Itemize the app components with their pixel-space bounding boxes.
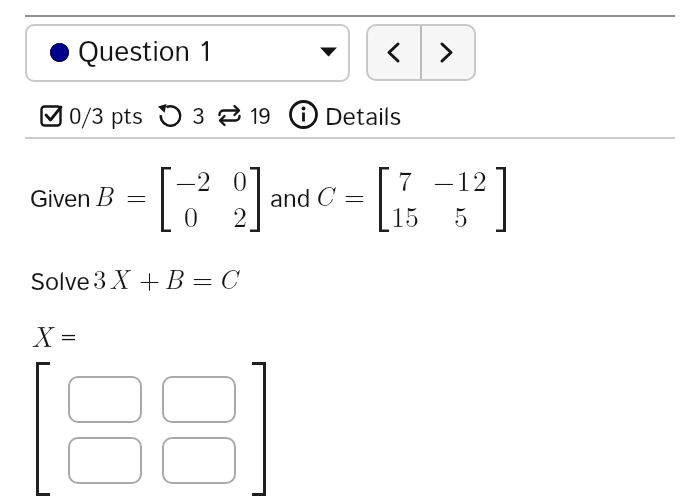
staticText: B xyxy=(94,176,114,214)
button[interactable] xyxy=(162,376,236,423)
staticText: 3 xyxy=(192,101,205,134)
staticText: −12 xyxy=(433,159,489,199)
staticText: B xyxy=(164,259,184,297)
staticText: C xyxy=(314,176,334,214)
staticText: Given xyxy=(30,182,91,218)
staticText: 0 xyxy=(184,195,199,235)
staticText: 0/3 pts xyxy=(69,101,143,134)
button[interactable]: Details xyxy=(289,100,399,130)
button[interactable] xyxy=(68,437,142,484)
staticText: 2 xyxy=(233,195,248,235)
staticText: 0 xyxy=(233,159,248,199)
staticText: and xyxy=(270,182,311,218)
staticText: 19 xyxy=(249,101,271,134)
button[interactable] xyxy=(68,376,142,423)
staticText: = xyxy=(192,259,214,297)
staticText: 15 xyxy=(391,195,420,235)
staticText: + xyxy=(139,259,161,297)
staticText: Question 1 xyxy=(78,33,211,73)
staticText: 3 xyxy=(93,259,107,297)
staticText: X xyxy=(109,259,130,297)
staticText: −2 xyxy=(175,159,211,199)
staticText: 7 xyxy=(398,159,413,199)
staticText: Solve xyxy=(30,265,91,301)
staticText: = xyxy=(126,176,148,214)
staticText: C xyxy=(218,259,238,297)
button[interactable] xyxy=(162,437,236,484)
staticText: 5 xyxy=(454,195,469,235)
staticText: = xyxy=(344,176,366,214)
button[interactable] xyxy=(366,24,420,81)
button[interactable] xyxy=(422,24,476,81)
staticText: = xyxy=(61,322,76,357)
button[interactable]: Question 1 xyxy=(25,24,350,82)
staticText: Details xyxy=(325,100,401,130)
staticText: X xyxy=(31,314,53,355)
